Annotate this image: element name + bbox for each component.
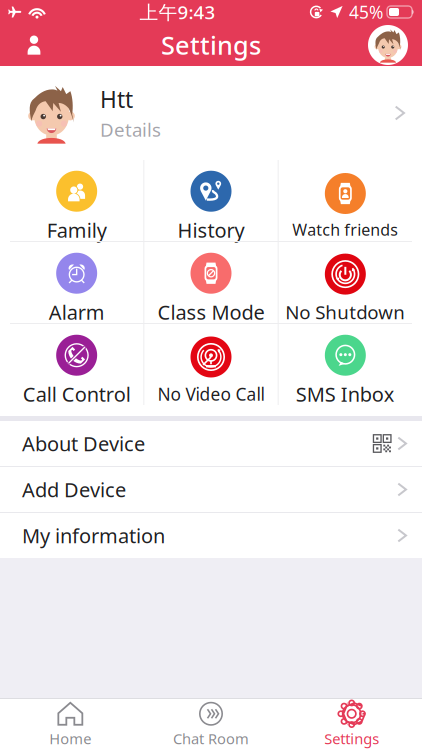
button[interactable]: No Video Call (144, 324, 278, 405)
staticText: Home (49, 729, 91, 748)
staticText: Family (47, 217, 107, 243)
staticText: Htt (100, 84, 133, 114)
staticText: Settings (324, 729, 379, 748)
staticText: Settings (161, 28, 261, 62)
button[interactable]: About Device (0, 421, 422, 466)
staticText: Class Mode (157, 299, 264, 325)
button[interactable]: Class Mode (144, 242, 278, 323)
staticText: 45% (349, 0, 383, 23)
button[interactable]: Family (10, 160, 143, 241)
staticText: SMS Inbox (296, 381, 395, 407)
staticText: Alarm (49, 299, 105, 325)
button[interactable]: Home (0, 699, 141, 750)
button[interactable]: Chat Room (141, 699, 281, 750)
staticText: Details (100, 117, 161, 142)
staticText: Add Device (22, 476, 126, 503)
staticText: About Device (22, 430, 145, 457)
button[interactable]: SMS Inbox (279, 324, 412, 405)
button[interactable]: Watch friends (279, 160, 412, 241)
button[interactable]: Alarm (10, 242, 143, 323)
button[interactable]: History (144, 160, 278, 241)
staticText: Watch friends (292, 219, 398, 240)
button[interactable]: Profile (366, 23, 410, 67)
button[interactable]: Account (12, 23, 56, 67)
button[interactable]: No Shutdown (279, 242, 412, 323)
button[interactable]: My information (0, 513, 422, 558)
staticText: My information (22, 522, 165, 549)
button[interactable]: Htt (0, 66, 422, 160)
button[interactable]: Settings (281, 699, 422, 750)
button[interactable]: Call Control (10, 324, 143, 405)
staticText: Call Control (23, 381, 131, 407)
staticText: Chat Room (173, 729, 249, 748)
staticText: No Shutdown (285, 300, 405, 324)
staticText: History (177, 217, 244, 243)
staticText: 上午9:43 (139, 0, 215, 24)
staticText: No Video Call (157, 382, 264, 405)
button[interactable]: Add Device (0, 467, 422, 512)
